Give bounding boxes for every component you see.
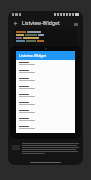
button[interactable] xyxy=(16,85,75,93)
button[interactable] xyxy=(14,29,77,45)
button[interactable] xyxy=(16,69,75,77)
button[interactable] xyxy=(16,101,75,109)
staticText: Listview-Widget xyxy=(22,20,60,27)
button[interactable] xyxy=(16,77,75,85)
button[interactable] xyxy=(12,142,79,159)
staticText: Listview-Widget xyxy=(19,53,47,58)
button[interactable]: More options xyxy=(72,20,80,28)
button[interactable] xyxy=(16,117,75,125)
button[interactable]: Back xyxy=(11,19,20,28)
button[interactable] xyxy=(16,61,75,69)
button[interactable] xyxy=(16,125,75,133)
button[interactable] xyxy=(16,109,75,117)
button[interactable] xyxy=(16,93,75,101)
